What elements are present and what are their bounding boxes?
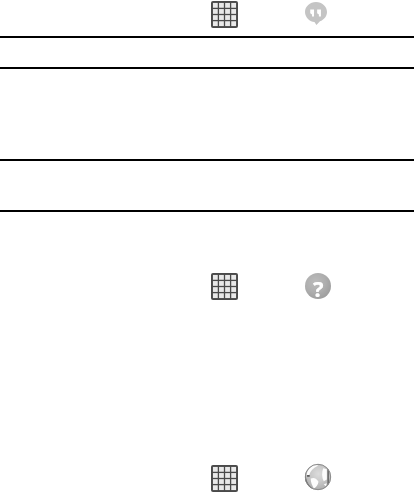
other: Apps	[211, 465, 238, 492]
button[interactable]: Browser	[296, 462, 340, 492]
button[interactable]: Help	[296, 270, 340, 302]
button[interactable]: Apps	[198, 0, 250, 30]
other: Hangouts	[305, 2, 327, 25]
other: Apps	[211, 273, 238, 300]
other: Help	[305, 273, 331, 299]
button[interactable]: Apps	[198, 270, 250, 302]
other: Apps	[211, 1, 238, 28]
other: Browser	[305, 464, 331, 490]
button[interactable]: Apps	[198, 462, 250, 492]
staticText: ?	[313, 273, 324, 299]
button[interactable]: Hangouts	[296, 0, 336, 30]
